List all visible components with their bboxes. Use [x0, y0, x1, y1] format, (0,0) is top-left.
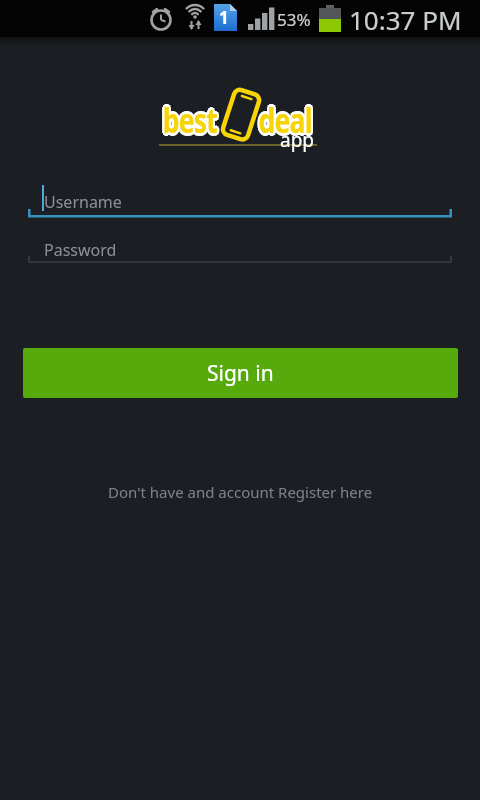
staticText: best	[161, 99, 216, 145]
staticText: Don't have and account Register here	[108, 482, 373, 502]
button[interactable]: Don't have and account Register here	[0, 478, 480, 506]
staticText: Password	[44, 239, 117, 261]
staticText: 1	[219, 6, 229, 29]
staticText: best	[163, 94, 217, 140]
staticText: best	[161, 95, 216, 141]
staticText: deal	[259, 100, 312, 146]
staticText: 10:37 PM	[349, 2, 462, 37]
staticText: Sign in	[207, 359, 274, 388]
staticText: app	[280, 127, 315, 153]
staticText: deal	[257, 95, 311, 141]
staticText: deal	[256, 97, 310, 143]
staticText: best	[163, 97, 217, 143]
staticText: best	[164, 99, 219, 145]
staticText: deal	[261, 97, 315, 143]
staticText: deal	[259, 94, 312, 140]
button[interactable]: Username	[28, 180, 452, 220]
staticText: best	[164, 95, 219, 141]
staticText: deal	[260, 95, 314, 141]
staticText: best	[163, 100, 217, 146]
staticText: deal	[259, 97, 312, 143]
staticText: 53%	[277, 8, 311, 31]
staticText: deal	[257, 99, 311, 145]
staticText: deal	[260, 99, 314, 145]
staticText: best	[160, 97, 215, 143]
staticText: best	[165, 97, 220, 143]
button[interactable]: Sign in	[23, 348, 458, 398]
staticText: Username	[44, 191, 122, 213]
button[interactable]: Password	[28, 228, 452, 266]
